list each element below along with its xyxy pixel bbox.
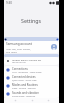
staticText: Modes and Routines [12, 83, 38, 87]
button[interactable]: Back [42, 98, 54, 103]
staticText: and more [6, 50, 17, 53]
staticText: 9:30 [6, 1, 12, 5]
button[interactable]: Sounds and vibration [4, 90, 59, 98]
staticText: Wi-Fi · Bluetooth · Flight mode [12, 71, 42, 74]
staticText: Sleep · Driving · Exercise [12, 87, 36, 90]
button[interactable]: Home [26, 98, 38, 103]
button[interactable]: Connected devices [4, 74, 59, 82]
staticText: Connections [12, 67, 28, 71]
button[interactable]: Mobile data is turned off [4, 57, 59, 65]
staticText: Mobile data is turned off [12, 58, 41, 61]
button[interactable]: Recent apps [9, 98, 21, 103]
staticText: Samsung account [6, 42, 32, 46]
button[interactable]: Connections [4, 66, 59, 74]
button[interactable]: Search settings [4, 37, 59, 41]
button[interactable]: Samsung account [4, 41, 59, 53]
staticText: Quick Share · Smart View [12, 79, 37, 82]
staticText: Your Tab, your Galaxy, [6, 47, 31, 50]
staticText: Settings [21, 17, 42, 24]
staticText: Sounds and vibration [12, 91, 39, 95]
staticText: Tap to turn on [12, 61, 26, 64]
staticText: Sound mode · Ringtone [12, 95, 36, 98]
button[interactable]: Modes and Routines [4, 82, 59, 90]
staticText: Connected devices [12, 75, 36, 79]
